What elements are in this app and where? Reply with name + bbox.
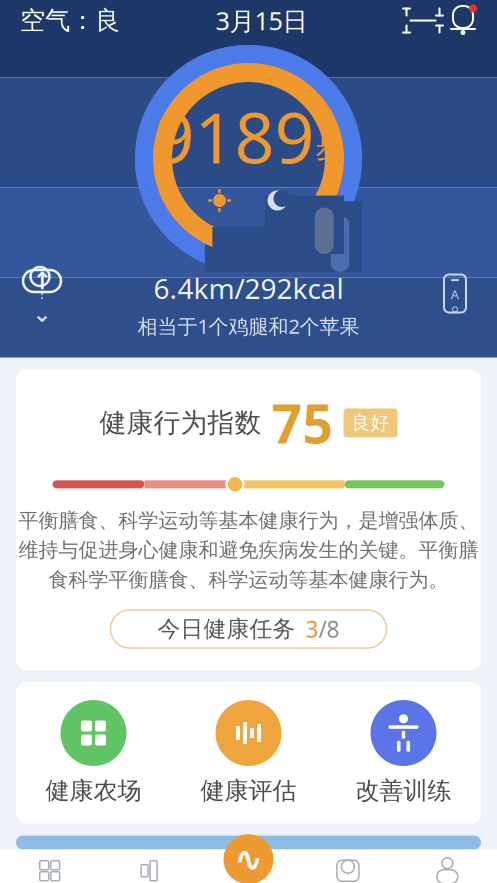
staticText: 健康行为指数 <box>99 406 261 439</box>
staticText: 6.4km/292kcal <box>153 269 343 307</box>
button[interactable]: 活动竞赛 <box>99 852 199 883</box>
staticText: ∿ <box>234 839 263 879</box>
staticText: 3 <box>305 614 318 644</box>
staticText: 食科学平衡膳食、科学运动等基本健康行为。 <box>48 567 448 592</box>
button[interactable]: 我的 <box>398 852 497 883</box>
button[interactable]: 今日健康任务 <box>110 610 386 648</box>
staticText: 相当于1个鸡腿和2个苹果 <box>137 313 359 339</box>
staticText: 改善训练 <box>355 776 451 805</box>
button[interactable]: 万步圈 <box>0 852 99 883</box>
button[interactable]: 健康评估 <box>171 700 326 805</box>
staticText: 空气：良 <box>20 5 120 36</box>
staticText: ↑ <box>32 267 52 295</box>
staticText: 9189 <box>154 90 314 183</box>
staticText: 良好 <box>351 411 389 434</box>
staticText: 步 <box>315 131 342 164</box>
staticText: 健康评估 <box>200 776 296 805</box>
staticText: 75 <box>271 387 333 458</box>
staticText: ⌄ <box>32 301 51 327</box>
staticText: /8 <box>318 614 339 644</box>
button[interactable]: 同步上传 <box>14 262 70 324</box>
staticText: 平衡膳食、科学运动等基本健康行为，是增强体质、 <box>18 508 478 533</box>
staticText: 3月15日 <box>215 4 307 37</box>
button[interactable]: 扫一扫 <box>403 0 443 40</box>
button[interactable]: 健康农场 <box>16 700 171 805</box>
staticText: A <box>450 285 459 303</box>
staticText: 今日健康任务 <box>157 615 295 643</box>
button[interactable]: 通知 <box>443 0 483 40</box>
staticText: 维持与促进身心健康和避免疾病发生的关键。平衡膳 <box>18 538 478 562</box>
button[interactable]: 设备 <box>427 262 483 324</box>
button[interactable]: 万步商城 <box>298 852 398 883</box>
button[interactable]: 改善训练 <box>326 700 481 805</box>
staticText: 健康农场 <box>45 776 141 805</box>
button[interactable]: ∿ <box>199 854 298 883</box>
